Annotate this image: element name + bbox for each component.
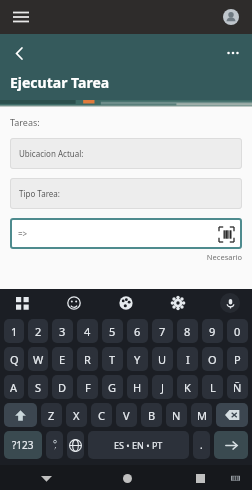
staticText: S bbox=[35, 380, 42, 395]
button[interactable]: Account bbox=[220, 6, 242, 28]
button[interactable]: U bbox=[152, 347, 173, 371]
button[interactable]: Q bbox=[4, 347, 24, 371]
button[interactable]: Ñ bbox=[227, 375, 248, 399]
staticText: 3 bbox=[59, 324, 66, 339]
button[interactable]: Scan barcode bbox=[217, 225, 235, 243]
button[interactable]: Voice input bbox=[220, 293, 240, 313]
staticText: P bbox=[234, 352, 241, 367]
button[interactable]: G bbox=[102, 375, 123, 399]
button[interactable]: D bbox=[52, 375, 73, 399]
button[interactable]: Backspace bbox=[216, 403, 248, 427]
staticText: 4 bbox=[84, 324, 91, 339]
staticText: V bbox=[123, 408, 130, 423]
staticText: Ñ bbox=[233, 380, 242, 395]
button[interactable]: => bbox=[10, 218, 242, 249]
button[interactable]: Recent apps bbox=[188, 466, 212, 490]
button[interactable]: P bbox=[227, 347, 248, 371]
staticText: M bbox=[197, 408, 207, 423]
staticText: 2 bbox=[35, 324, 42, 339]
button[interactable]: C bbox=[91, 403, 112, 427]
staticText: ?123 bbox=[12, 438, 34, 452]
staticText: B bbox=[148, 408, 156, 423]
button[interactable]: 7 bbox=[152, 319, 173, 343]
button[interactable]: 2 bbox=[28, 319, 48, 343]
button[interactable]: K bbox=[177, 375, 198, 399]
staticText: E bbox=[59, 352, 66, 367]
button[interactable]: R bbox=[77, 347, 98, 371]
button[interactable]: 1 bbox=[4, 319, 24, 343]
button[interactable]: N bbox=[166, 403, 187, 427]
button[interactable]: 4 bbox=[77, 319, 98, 343]
button[interactable]: Emoji bbox=[64, 293, 84, 313]
button[interactable]: Enter bbox=[214, 431, 248, 459]
button[interactable]: I bbox=[177, 347, 198, 371]
button[interactable]: Z bbox=[41, 403, 62, 427]
button[interactable]: Tipo Tarea: bbox=[10, 178, 242, 209]
button[interactable]: ?123 bbox=[4, 431, 42, 459]
staticText: ES • EN • PT bbox=[114, 439, 163, 451]
staticText: T bbox=[109, 352, 116, 367]
staticText: 5 bbox=[109, 324, 116, 339]
staticText: 8 bbox=[184, 324, 191, 339]
staticText: J bbox=[161, 380, 165, 395]
button[interactable]: W bbox=[28, 347, 48, 371]
button[interactable]: 5 bbox=[102, 319, 123, 343]
staticText: => bbox=[18, 228, 28, 239]
staticText: . bbox=[200, 438, 203, 452]
button[interactable]: . bbox=[193, 431, 210, 459]
button[interactable]: Back bbox=[34, 466, 58, 490]
button[interactable]: Themes bbox=[116, 293, 136, 313]
staticText: 1 bbox=[11, 324, 18, 339]
button[interactable]: Menu bbox=[8, 4, 34, 30]
staticText: 0 bbox=[234, 324, 241, 339]
button[interactable]: H bbox=[127, 375, 148, 399]
button[interactable]: Change language bbox=[67, 431, 84, 459]
staticText: D bbox=[58, 380, 67, 395]
button[interactable]: A bbox=[4, 375, 24, 399]
staticText: G bbox=[108, 380, 117, 395]
button[interactable]: Keyboard layouts bbox=[12, 293, 32, 313]
staticText: 7 bbox=[159, 324, 166, 339]
button[interactable]: 3 bbox=[52, 319, 73, 343]
button[interactable]: Ubicacion Actual: bbox=[10, 138, 242, 169]
button[interactable]: O bbox=[202, 347, 223, 371]
button[interactable]: ES • EN • PT bbox=[88, 431, 189, 459]
button[interactable]: Shift bbox=[4, 403, 37, 427]
button[interactable]: More options bbox=[220, 40, 246, 66]
button[interactable]: M bbox=[191, 403, 212, 427]
button[interactable]: Hide keyboard bbox=[225, 468, 245, 488]
staticText: K bbox=[184, 380, 191, 395]
button[interactable]: Y bbox=[127, 347, 148, 371]
button[interactable]: 8 bbox=[177, 319, 198, 343]
button[interactable]: Home bbox=[115, 466, 139, 490]
button[interactable]: S bbox=[28, 375, 48, 399]
button[interactable]: X bbox=[66, 403, 87, 427]
staticText: L bbox=[210, 380, 216, 395]
staticText: Necesario bbox=[10, 252, 242, 262]
staticText: 9 bbox=[209, 324, 216, 339]
staticText: U bbox=[158, 352, 167, 367]
staticText: A bbox=[10, 380, 18, 395]
button[interactable]: T bbox=[102, 347, 123, 371]
staticText: Q bbox=[10, 352, 19, 367]
button[interactable]: 6 bbox=[127, 319, 148, 343]
staticText: Tipo Tarea: bbox=[19, 188, 60, 199]
button[interactable]: 0 bbox=[227, 319, 248, 343]
staticText: Ejecutar Tarea bbox=[10, 73, 110, 92]
staticText: Ubicacion Actual: bbox=[19, 148, 84, 159]
button[interactable]: 9 bbox=[202, 319, 223, 343]
staticText: C bbox=[98, 408, 105, 423]
button[interactable]: V bbox=[116, 403, 137, 427]
staticText: N bbox=[172, 408, 181, 423]
staticText: I bbox=[186, 352, 190, 367]
button[interactable]: E bbox=[52, 347, 73, 371]
button[interactable]: Back bbox=[6, 40, 32, 66]
button[interactable]: B bbox=[141, 403, 162, 427]
button[interactable]: F bbox=[77, 375, 98, 399]
button[interactable]: L bbox=[202, 375, 223, 399]
staticText: Y bbox=[134, 352, 141, 367]
button[interactable]: J bbox=[152, 375, 173, 399]
button[interactable]: Comma bbox=[46, 431, 63, 459]
button[interactable]: Settings bbox=[168, 293, 188, 313]
staticText: R bbox=[84, 352, 91, 367]
